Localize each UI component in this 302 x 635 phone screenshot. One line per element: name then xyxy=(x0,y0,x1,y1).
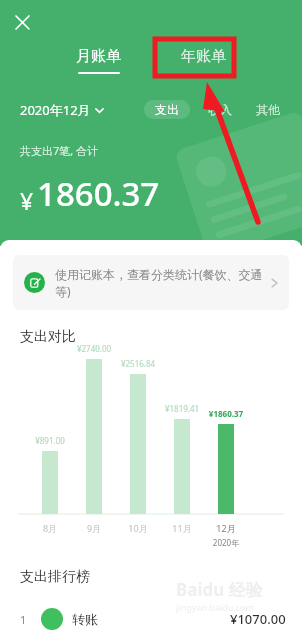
button[interactable]: 其他 xyxy=(252,99,284,120)
button[interactable]: Close xyxy=(6,6,38,38)
staticText: 9月 xyxy=(72,522,116,534)
button[interactable]: 1 xyxy=(0,608,302,630)
staticText: ¥2740.00 xyxy=(67,343,121,354)
staticText: ¥ xyxy=(20,185,34,216)
staticText: 共支出7笔, 合计 xyxy=(20,143,99,158)
staticText: Baidu 经验 xyxy=(176,578,263,601)
staticText: 支出排行榜 xyxy=(20,568,90,586)
staticText: 支出 xyxy=(155,102,179,117)
button[interactable]: 2020年12月 xyxy=(20,101,104,119)
staticText: 支出对比 xyxy=(20,328,76,346)
staticText: ¥891.00 xyxy=(23,435,77,446)
staticText: 年账单 xyxy=(181,47,226,66)
staticText: jingyan.baidu.com xyxy=(176,601,254,613)
staticText: 使用记账本，查看分类统计(餐饮、交通等) xyxy=(55,266,265,299)
staticText: ¥1070.00 xyxy=(230,610,286,628)
staticText: ¥2516.84 xyxy=(111,358,165,369)
staticText: 2020年 xyxy=(202,537,250,548)
staticText: 转账 xyxy=(72,611,98,627)
staticText: ¥1819.41 xyxy=(155,403,209,414)
staticText: 8月 xyxy=(28,522,72,534)
staticText: 2020年12月 xyxy=(20,101,91,119)
other: annotation box xyxy=(155,39,234,76)
button[interactable]: 支出 xyxy=(144,100,190,119)
button[interactable]: 年账单 xyxy=(167,45,240,68)
staticText: 1860.37 xyxy=(37,171,160,216)
staticText: 12月 xyxy=(204,522,248,534)
staticText: 月账单 xyxy=(76,47,121,66)
staticText: ¥1860.37 xyxy=(199,408,253,419)
button[interactable]: 月账单 xyxy=(62,45,135,76)
staticText: 收入 xyxy=(208,102,232,117)
staticText: 其他 xyxy=(256,102,280,117)
staticText: 1 xyxy=(20,612,27,627)
button[interactable]: 使用记账本，查看分类统计(餐饮、交通等) xyxy=(13,255,289,310)
button[interactable]: 收入 xyxy=(204,99,236,120)
staticText: 10月 xyxy=(116,522,160,534)
staticText: 11月 xyxy=(160,522,204,534)
